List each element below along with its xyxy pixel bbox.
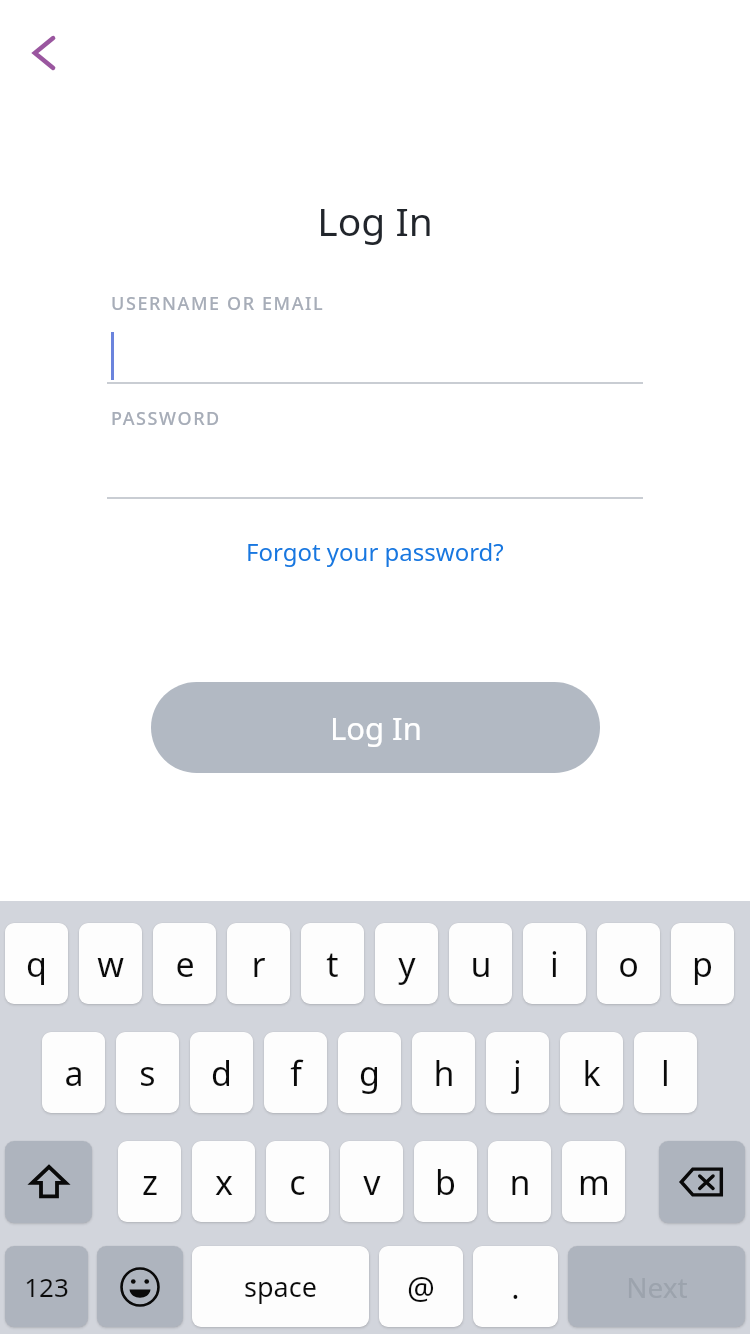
button[interactable]: space (192, 1246, 369, 1327)
staticText: s (139, 1050, 156, 1096)
button[interactable]: . (473, 1246, 558, 1327)
staticText: USERNAME OR EMAIL (111, 291, 325, 316)
staticText: r (251, 941, 266, 987)
button[interactable]: v (340, 1141, 403, 1222)
button[interactable]: Log In (151, 682, 600, 773)
staticText: p (692, 941, 713, 987)
button[interactable]: e (153, 923, 216, 1004)
button[interactable]: g (338, 1032, 401, 1113)
button[interactable]: n (488, 1141, 551, 1222)
button[interactable]: q (5, 923, 68, 1004)
staticText: z (142, 1159, 158, 1205)
staticText: y (398, 941, 416, 987)
button[interactable]: Emoji (97, 1246, 183, 1327)
staticText: . (511, 1266, 520, 1308)
button[interactable]: f (264, 1032, 327, 1113)
button[interactable]: y (375, 923, 438, 1004)
staticText: d (211, 1050, 232, 1096)
button[interactable]: p (671, 923, 734, 1004)
button[interactable]: l (634, 1032, 697, 1113)
staticText: k (582, 1050, 601, 1096)
staticText: space (244, 1268, 317, 1305)
button[interactable]: Forgot your password? (230, 529, 520, 574)
staticText: v (363, 1159, 381, 1205)
button[interactable]: m (562, 1141, 625, 1222)
staticText: o (618, 941, 639, 987)
staticText: b (435, 1159, 456, 1205)
staticText: Log In (0, 194, 750, 247)
button[interactable]: c (266, 1141, 329, 1222)
button[interactable]: t (301, 923, 364, 1004)
button[interactable] (107, 330, 643, 384)
button[interactable]: j (486, 1032, 549, 1113)
staticText: u (470, 941, 492, 987)
button[interactable]: s (116, 1032, 179, 1113)
button[interactable]: Next (568, 1246, 745, 1327)
button[interactable]: Back (10, 18, 80, 88)
button[interactable]: z (118, 1141, 181, 1222)
staticText: j (513, 1050, 522, 1096)
staticText: m (578, 1159, 610, 1205)
button[interactable]: Backspace (659, 1141, 745, 1223)
button[interactable]: r (227, 923, 290, 1004)
button[interactable]: Shift (5, 1141, 92, 1223)
staticText: g (359, 1050, 380, 1096)
staticText: Next (626, 1268, 688, 1306)
button[interactable]: d (190, 1032, 253, 1113)
staticText: t (326, 941, 339, 987)
staticText: x (215, 1159, 233, 1205)
staticText: c (289, 1159, 306, 1205)
staticText: e (175, 941, 195, 987)
staticText: h (433, 1050, 455, 1096)
staticText: w (97, 941, 124, 987)
staticText: @ (407, 1266, 435, 1308)
staticText: f (290, 1050, 302, 1096)
staticText: q (26, 941, 47, 987)
button[interactable]: 123 (5, 1246, 88, 1327)
button[interactable]: i (523, 923, 586, 1004)
button[interactable]: b (414, 1141, 477, 1222)
staticText: PASSWORD (111, 406, 221, 431)
staticText: n (509, 1159, 531, 1205)
button[interactable]: u (449, 923, 512, 1004)
button[interactable]: x (192, 1141, 255, 1222)
button[interactable]: o (597, 923, 660, 1004)
staticText: l (661, 1050, 670, 1096)
staticText: a (64, 1050, 84, 1096)
button[interactable]: h (412, 1032, 475, 1113)
button[interactable] (107, 445, 643, 499)
staticText: 123 (24, 1269, 69, 1304)
button[interactable]: a (42, 1032, 105, 1113)
button[interactable]: @ (379, 1246, 463, 1327)
staticText: i (550, 941, 559, 987)
button[interactable]: k (560, 1032, 623, 1113)
staticText: Log In (330, 707, 422, 749)
staticText: Forgot your password? (246, 535, 504, 568)
button[interactable]: w (79, 923, 142, 1004)
